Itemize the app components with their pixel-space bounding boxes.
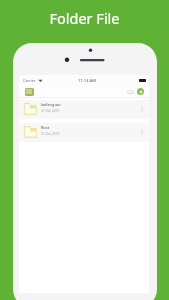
button[interactable]: Root xyxy=(19,123,149,142)
staticText: kaifeng.wu xyxy=(41,102,61,107)
button[interactable]: kaifeng.wu xyxy=(19,100,149,119)
button[interactable]: Menu xyxy=(25,88,34,96)
button[interactable]: Add xyxy=(137,88,144,95)
staticText: 31 Dec,2019 xyxy=(41,109,60,113)
staticText: 11:14 AM xyxy=(78,78,96,84)
staticText: Root xyxy=(41,125,50,130)
button[interactable]: Cloud upload xyxy=(127,89,134,95)
staticText: 31 Dec,2019 xyxy=(41,132,60,136)
staticText: Folder File xyxy=(0,8,169,28)
staticText: Carrier xyxy=(23,78,36,83)
